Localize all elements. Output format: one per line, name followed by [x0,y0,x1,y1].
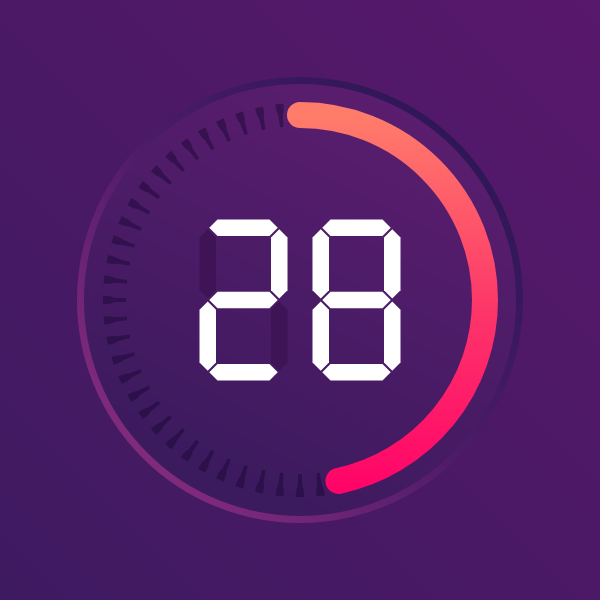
button[interactable]: Countdown timer, 28 seconds remaining [78,78,522,522]
